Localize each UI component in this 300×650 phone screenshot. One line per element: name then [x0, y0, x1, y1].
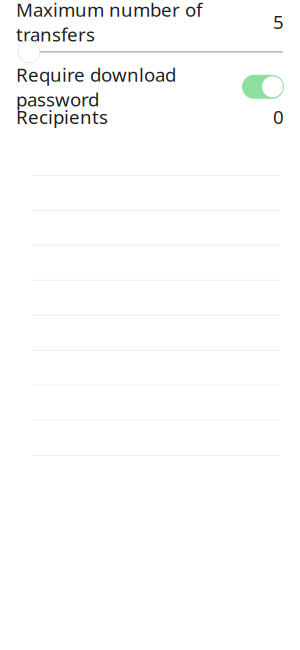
button[interactable]: Require download password — [0, 75, 300, 99]
staticText: Maximum number of transfers — [16, 0, 202, 47]
button[interactable]: Maximum number of transfers — [0, 12, 300, 32]
staticText: 5 — [273, 9, 284, 34]
staticText: 0 — [273, 104, 284, 129]
button[interactable]: Recipients — [0, 107, 300, 127]
staticText: Recipients — [16, 104, 108, 129]
staticText: Require download password — [16, 62, 176, 112]
